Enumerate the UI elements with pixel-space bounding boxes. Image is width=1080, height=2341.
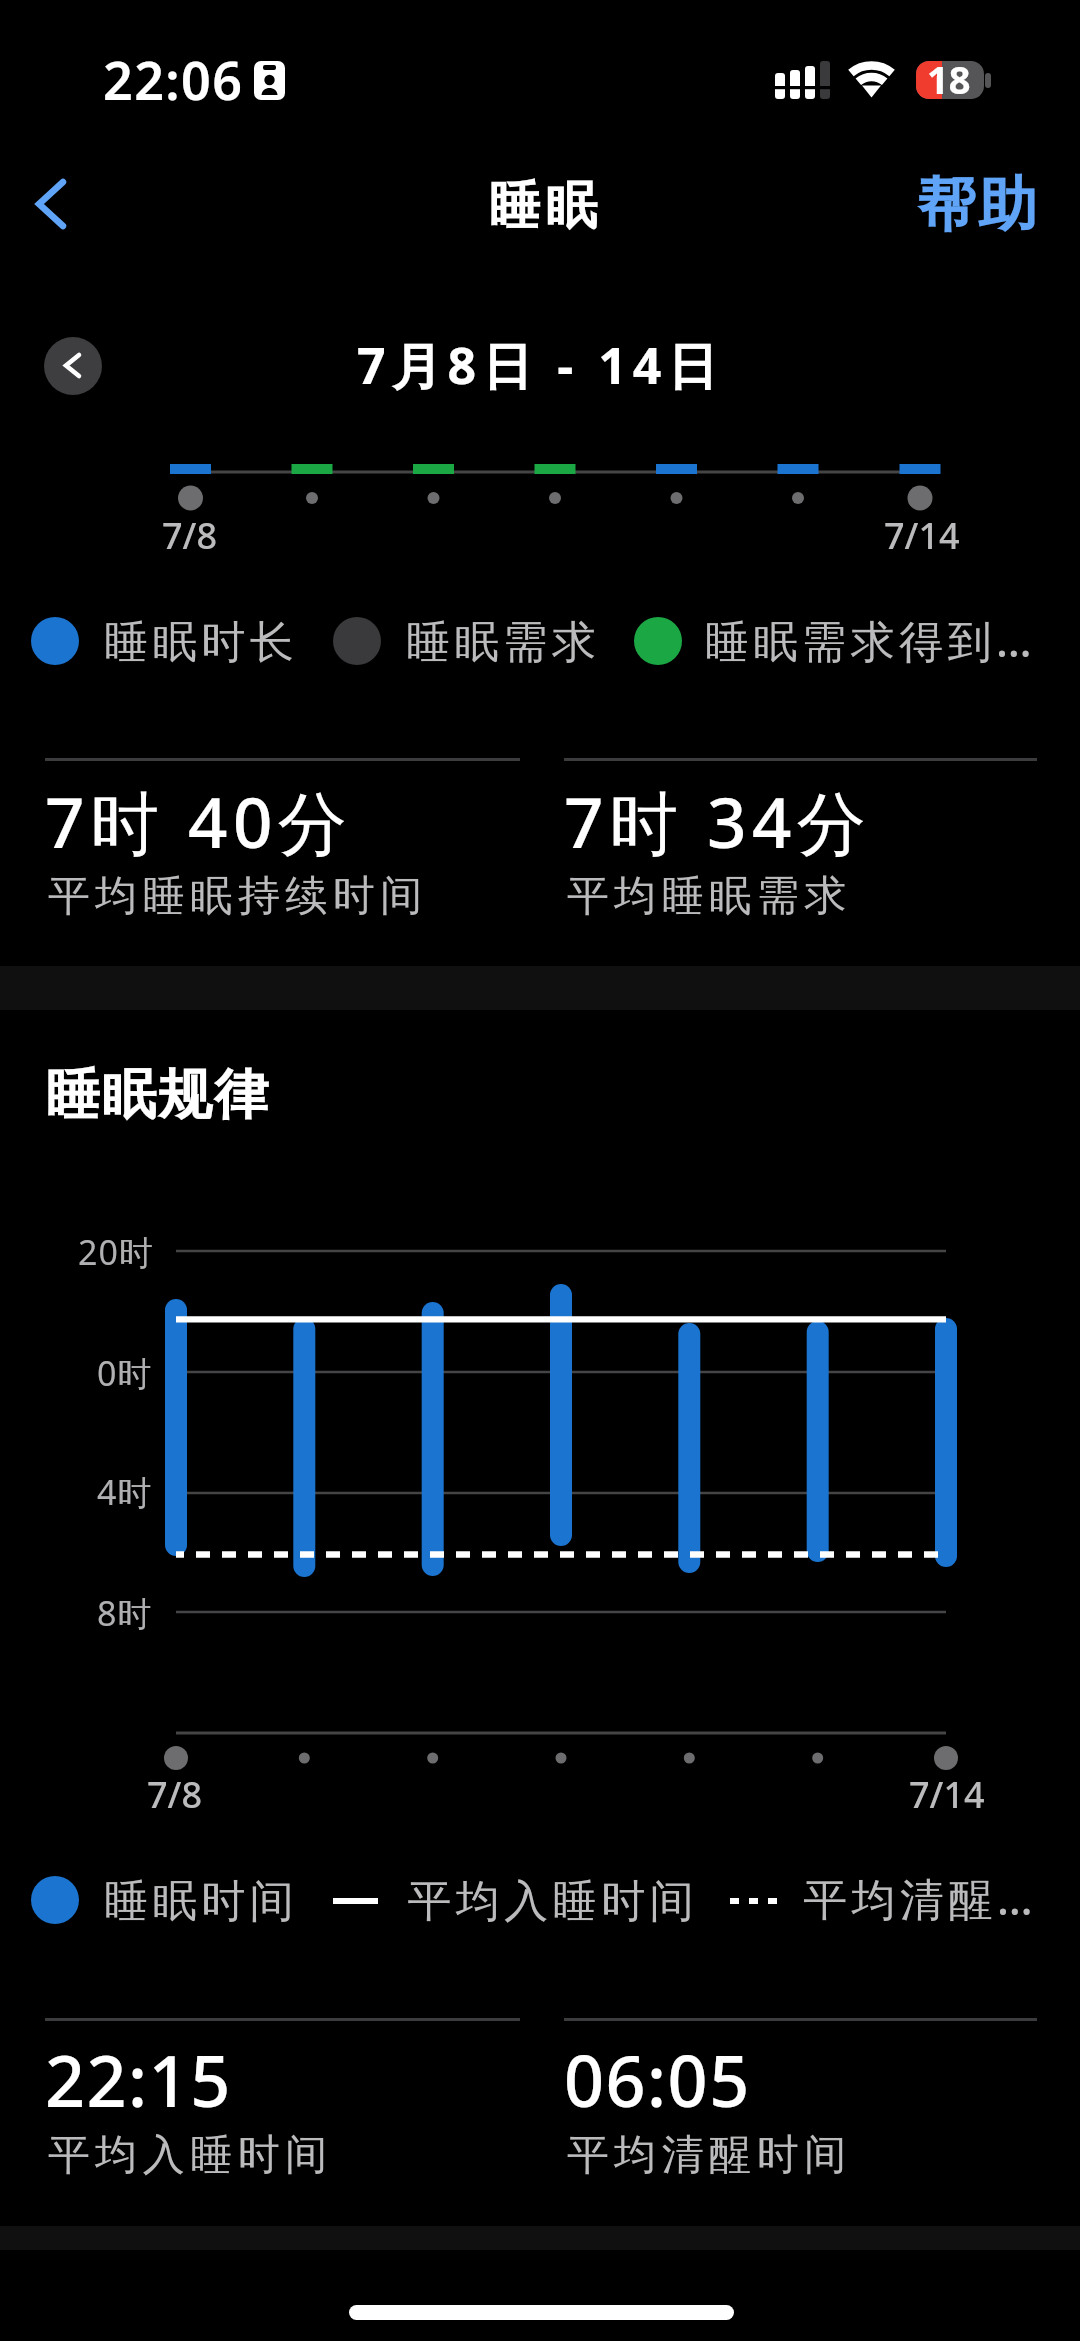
button[interactable]: 睡眠时长	[31, 611, 291, 671]
staticText: 平均入睡时间	[45, 2129, 330, 2182]
staticText: 22:06	[103, 44, 244, 115]
staticText: 4时	[97, 1469, 153, 1515]
staticText: 7/8	[147, 1770, 203, 1819]
button[interactable]: 平均清醒…	[722, 1864, 1052, 1924]
staticText: 睡眠需求	[404, 615, 598, 670]
button[interactable]: 帮助	[916, 168, 1038, 242]
button[interactable]: 22:15	[45, 2018, 520, 2182]
button[interactable]: 06:05	[564, 2018, 1037, 2182]
button[interactable]: 7时 34分	[564, 758, 1037, 923]
button[interactable]: 睡眠需求	[333, 611, 593, 671]
staticText: 睡眠规律	[45, 1061, 269, 1129]
button[interactable]: Back	[12, 164, 92, 244]
staticText: 睡眠	[486, 174, 600, 238]
staticText: 7时 40分	[45, 774, 353, 868]
staticText: 平均入睡时间	[405, 1874, 696, 1929]
staticText: 帮助	[916, 168, 1038, 242]
staticText: 睡眠需求得到…	[705, 610, 1037, 670]
staticText: 平均清醒时间	[564, 2129, 849, 2182]
staticText: 7月8日 - 14日	[357, 331, 724, 399]
staticText: 平均睡眠持续时间	[45, 870, 425, 923]
staticText: 平均清醒…	[803, 1868, 1038, 1928]
staticText: 22:15	[45, 2032, 232, 2127]
staticText: 0时	[97, 1350, 153, 1396]
staticText: 睡眠时长	[102, 615, 296, 670]
button[interactable]: 睡眠需求得到…	[634, 611, 1054, 671]
staticText: 18	[927, 53, 971, 105]
staticText: 睡眠时间	[102, 1874, 296, 1929]
staticText: 20时	[78, 1229, 154, 1275]
button[interactable]: 平均入睡时间	[325, 1870, 697, 1930]
staticText: 平均睡眠需求	[564, 870, 849, 923]
staticText: 7/14	[909, 1770, 985, 1819]
button[interactable]: Previous week	[44, 337, 102, 395]
staticText: 7/14	[884, 511, 960, 560]
staticText: 8时	[97, 1590, 153, 1636]
button[interactable]: 7时 40分	[45, 758, 520, 923]
button[interactable]: 睡眠时间	[31, 1870, 293, 1930]
staticText: 7时 34分	[564, 774, 872, 868]
staticText: 7/8	[162, 511, 218, 560]
staticText: 06:05	[564, 2032, 751, 2127]
